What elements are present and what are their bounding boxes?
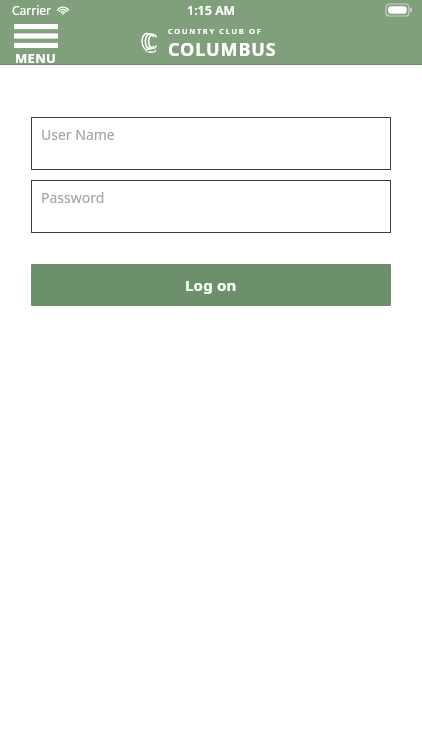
- button[interactable]: Password: [31, 180, 391, 233]
- staticText: User Name: [41, 125, 115, 144]
- button[interactable]: User Name: [31, 117, 391, 170]
- staticText: 1:15 AM: [187, 2, 236, 19]
- staticText: COUNTRY CLUB OF: [168, 26, 263, 36]
- button[interactable]: Menu: [14, 24, 58, 65]
- button[interactable]: Log on: [31, 264, 391, 306]
- staticText: Password: [41, 188, 105, 207]
- staticText: Log on: [185, 275, 237, 295]
- staticText: COLUMBUS: [168, 37, 277, 62]
- staticText: Carrier: [12, 2, 52, 18]
- button[interactable]: COUNTRY CLUB OF: [141, 26, 277, 62]
- staticText: MENU: [15, 49, 57, 65]
